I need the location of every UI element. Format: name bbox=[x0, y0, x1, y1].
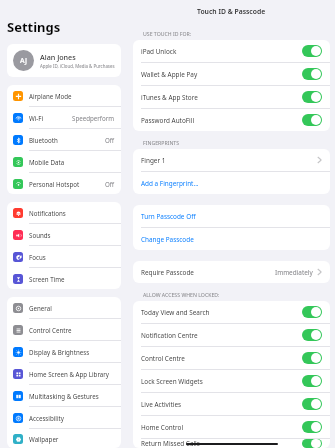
button[interactable]: On bbox=[302, 352, 322, 364]
button[interactable]: Turn Passcode Off bbox=[133, 205, 330, 227]
staticText: Change Passcode bbox=[141, 235, 194, 244]
button[interactable]: Add a Fingerprint... bbox=[133, 172, 330, 194]
button[interactable]: On bbox=[302, 398, 322, 410]
button[interactable]: Password AutoFill bbox=[133, 109, 330, 131]
staticText: Settings bbox=[7, 18, 61, 36]
button[interactable]: Require Passcode bbox=[133, 261, 330, 283]
button[interactable]: Notifications bbox=[7, 202, 121, 223]
staticText: Home Control bbox=[141, 423, 302, 432]
staticText: Notification Centre bbox=[141, 331, 302, 340]
staticText: Control Centre bbox=[141, 354, 302, 363]
staticText: Apple ID, iCloud, Media & Purchases bbox=[40, 63, 115, 69]
staticText: USE TOUCH ID FOR: bbox=[143, 30, 192, 37]
staticText: Home Screen & App Library bbox=[29, 370, 115, 378]
staticText: iTunes & App Store bbox=[141, 93, 302, 102]
button[interactable]: Home Control bbox=[133, 416, 330, 438]
button[interactable]: iPad Unlock bbox=[133, 40, 330, 62]
staticText: Immediately bbox=[275, 268, 313, 277]
button[interactable]: Live Activities bbox=[133, 393, 330, 415]
button[interactable]: Wi-Fi bbox=[7, 107, 121, 128]
button[interactable]: Display & Brightness bbox=[7, 341, 121, 362]
button[interactable]: Sounds bbox=[7, 224, 121, 245]
button[interactable]: Wallet & Apple Pay bbox=[133, 63, 330, 85]
button[interactable]: On bbox=[302, 329, 322, 341]
button[interactable]: On bbox=[302, 68, 322, 80]
button[interactable]: Multitasking & Gestures bbox=[7, 385, 121, 406]
staticText: Wallet & Apple Pay bbox=[141, 70, 302, 79]
button[interactable]: Change Passcode bbox=[133, 228, 330, 250]
staticText: Password AutoFill bbox=[141, 116, 302, 125]
button[interactable]: Notification Centre bbox=[133, 324, 330, 346]
staticText: Multitasking & Gestures bbox=[29, 392, 115, 400]
staticText: Turn Passcode Off bbox=[141, 212, 196, 221]
staticText: FINGERPRINTS bbox=[143, 139, 180, 146]
staticText: Return Missed Calls bbox=[141, 439, 302, 448]
staticText: Control Centre bbox=[29, 326, 115, 334]
button[interactable]: Mobile Data bbox=[7, 151, 121, 172]
button[interactable]: Bluetooth bbox=[7, 129, 121, 150]
button[interactable]: General bbox=[7, 297, 121, 318]
button[interactable]: Personal Hotspot bbox=[7, 173, 121, 194]
staticText: Lock Screen Widgets bbox=[141, 377, 302, 386]
button[interactable]: Return Missed Calls bbox=[133, 439, 330, 448]
staticText: Live Activities bbox=[141, 400, 302, 409]
staticText: Finger 1 bbox=[141, 156, 317, 165]
staticText: Off bbox=[105, 136, 115, 144]
button[interactable]: On bbox=[302, 421, 322, 433]
staticText: Display & Brightness bbox=[29, 348, 115, 356]
button[interactable]: On bbox=[302, 91, 322, 103]
button[interactable]: On bbox=[302, 45, 322, 57]
button[interactable]: Focus bbox=[7, 246, 121, 267]
button[interactable]: AJ bbox=[7, 44, 121, 77]
staticText: Focus bbox=[29, 253, 115, 261]
button[interactable]: On bbox=[302, 439, 322, 448]
staticText: Notifications bbox=[29, 209, 115, 217]
staticText: Wi-Fi bbox=[29, 114, 72, 122]
button[interactable]: Control Centre bbox=[133, 347, 330, 369]
staticText: Airplane Mode bbox=[29, 92, 115, 100]
staticText: Add a Fingerprint... bbox=[141, 179, 199, 188]
button[interactable]: Airplane Mode bbox=[7, 85, 121, 106]
button[interactable]: Today View and Search bbox=[133, 301, 330, 323]
staticText: iPad Unlock bbox=[141, 47, 302, 56]
button[interactable]: On bbox=[302, 306, 322, 318]
staticText: AJ bbox=[20, 56, 27, 66]
button[interactable]: Finger 1 bbox=[133, 149, 330, 171]
button[interactable]: Wallpaper bbox=[7, 429, 121, 448]
staticText: Require Passcode bbox=[141, 268, 275, 277]
button[interactable]: Home Screen & App Library bbox=[7, 363, 121, 384]
staticText: Alan Jones bbox=[40, 52, 76, 62]
staticText: Accessibility bbox=[29, 414, 115, 422]
button[interactable]: On bbox=[302, 375, 322, 387]
staticText: Touch ID & Passcode bbox=[197, 7, 266, 16]
button[interactable]: Lock Screen Widgets bbox=[133, 370, 330, 392]
staticText: Sounds bbox=[29, 231, 115, 239]
staticText: Screen Time bbox=[29, 275, 115, 283]
staticText: Off bbox=[105, 180, 115, 188]
staticText: Personal Hotspot bbox=[29, 180, 105, 188]
button[interactable]: iTunes & App Store bbox=[133, 86, 330, 108]
staticText: ALLOW ACCESS WHEN LOCKED: bbox=[143, 291, 220, 298]
staticText: General bbox=[29, 304, 115, 312]
button[interactable]: On bbox=[302, 114, 322, 126]
staticText: Speedperform bbox=[72, 114, 115, 122]
button[interactable]: Screen Time bbox=[7, 268, 121, 289]
staticText: Mobile Data bbox=[29, 158, 115, 166]
staticText: Bluetooth bbox=[29, 136, 105, 144]
staticText: Today View and Search bbox=[141, 308, 302, 317]
button[interactable]: Control Centre bbox=[7, 319, 121, 340]
button[interactable]: Accessibility bbox=[7, 407, 121, 428]
staticText: Wallpaper bbox=[29, 435, 115, 443]
